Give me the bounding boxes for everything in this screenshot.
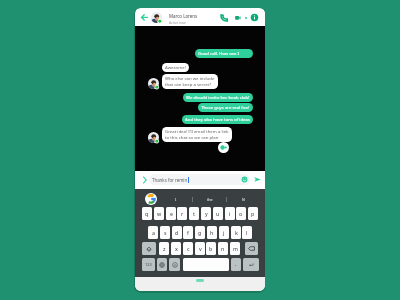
button[interactable]: Shift: [142, 242, 156, 255]
button[interactable]: Numbers: [142, 258, 155, 271]
button[interactable]: Period: [231, 258, 241, 271]
staticText: Good call. How can I: [198, 50, 239, 56]
button[interactable]: j: [219, 226, 229, 239]
button[interactable]: Send: [253, 175, 262, 184]
button[interactable]: u: [213, 207, 223, 220]
staticText: Who else can we include that can keep a …: [165, 75, 215, 87]
staticText: v: [199, 245, 202, 252]
staticText: r: [181, 210, 184, 217]
button[interactable]: the: [193, 194, 226, 204]
button[interactable]: i: [225, 207, 235, 220]
staticText: y: [205, 210, 208, 217]
button[interactable]: c: [183, 242, 193, 255]
staticText: m: [233, 245, 238, 252]
button[interactable]: l: [242, 226, 252, 239]
button[interactable]: z: [159, 242, 169, 255]
staticText: d: [175, 229, 179, 236]
button[interactable]: y: [201, 207, 211, 220]
staticText: t: [193, 210, 195, 217]
button[interactable]: Great idea! I'll email them a link to th…: [162, 127, 232, 142]
button[interactable]: Emoji: [241, 176, 248, 183]
staticText: e: [170, 210, 173, 217]
staticText: u: [216, 210, 220, 217]
button[interactable]: h: [207, 226, 217, 239]
button[interactable]: f: [183, 226, 193, 239]
button[interactable]: Space: [183, 258, 229, 271]
button[interactable]: N: [227, 194, 260, 204]
staticText: j: [223, 229, 225, 236]
staticText: i: [229, 210, 231, 217]
staticText: f: [187, 229, 189, 236]
staticText: c: [187, 245, 190, 252]
button[interactable]: w: [154, 207, 164, 220]
button[interactable]: Good call. How can I: [195, 49, 253, 58]
staticText: I: [175, 197, 177, 202]
staticText: Active now: [169, 20, 186, 24]
button[interactable]: r: [177, 207, 187, 220]
button[interactable]: Awesome!: [162, 63, 189, 72]
button[interactable]: And they also have tons of ideas: [182, 115, 253, 124]
staticText: g: [198, 229, 202, 236]
staticText: o: [239, 210, 243, 217]
button[interactable]: More options: [140, 175, 150, 185]
button[interactable]: Backspace: [245, 242, 258, 255]
staticText: a: [152, 229, 155, 236]
staticText: the: [207, 197, 213, 202]
staticText: l: [246, 229, 248, 236]
staticText: .: [235, 261, 237, 268]
button[interactable]: Voice call: [220, 13, 229, 22]
staticText: k: [235, 229, 238, 236]
staticText: Marco Lorens: [169, 13, 198, 19]
button[interactable]: e: [166, 207, 176, 220]
button[interactable]: q: [142, 207, 152, 220]
staticText: w: [157, 210, 162, 217]
button[interactable]: t: [189, 207, 199, 220]
staticText: N: [242, 197, 245, 202]
button[interactable]: Video call: [234, 13, 243, 22]
staticText: b: [209, 245, 213, 252]
button[interactable]: v: [195, 242, 205, 255]
button[interactable]: g: [195, 226, 205, 239]
staticText: We should invite her book club!: [186, 94, 250, 100]
button[interactable]: Info: [250, 13, 259, 22]
button[interactable]: I: [160, 194, 192, 204]
button[interactable]: d: [172, 226, 182, 239]
staticText: Thanks for remin: [152, 177, 188, 183]
staticText: Awesome!: [165, 64, 186, 70]
button[interactable]: p: [248, 207, 258, 220]
staticText: x: [175, 245, 178, 252]
button[interactable]: a: [148, 226, 158, 239]
button[interactable]: Change language: [157, 258, 167, 271]
staticText: And they also have tons of ideas: [185, 116, 250, 122]
button[interactable]: Emoji: [169, 258, 180, 271]
button[interactable]: o: [236, 207, 246, 220]
staticText: Great idea! I'll email them a link to th…: [165, 128, 229, 140]
button[interactable]: b: [206, 242, 216, 255]
button[interactable]: k: [231, 226, 241, 239]
button[interactable]: Thanks for remin: [149, 174, 250, 185]
button[interactable]: Those guys are real fun!: [198, 103, 253, 112]
staticText: n: [221, 245, 225, 252]
staticText: Those guys are real fun!: [201, 104, 250, 110]
button[interactable]: s: [160, 226, 170, 239]
button[interactable]: m: [230, 242, 240, 255]
staticText: z: [163, 245, 166, 252]
button[interactable]: Who else can we include that can keep a …: [162, 74, 218, 89]
staticText: q: [145, 210, 149, 217]
staticText: h: [210, 229, 214, 236]
staticText: s: [164, 229, 167, 236]
button[interactable]: We should invite her book club!: [183, 93, 253, 102]
button[interactable]: Enter: [243, 258, 259, 271]
button[interactable]: n: [218, 242, 228, 255]
button[interactable]: x: [171, 242, 181, 255]
button[interactable]: Back: [138, 11, 151, 24]
staticText: 123: [145, 262, 152, 267]
staticText: p: [251, 210, 255, 217]
